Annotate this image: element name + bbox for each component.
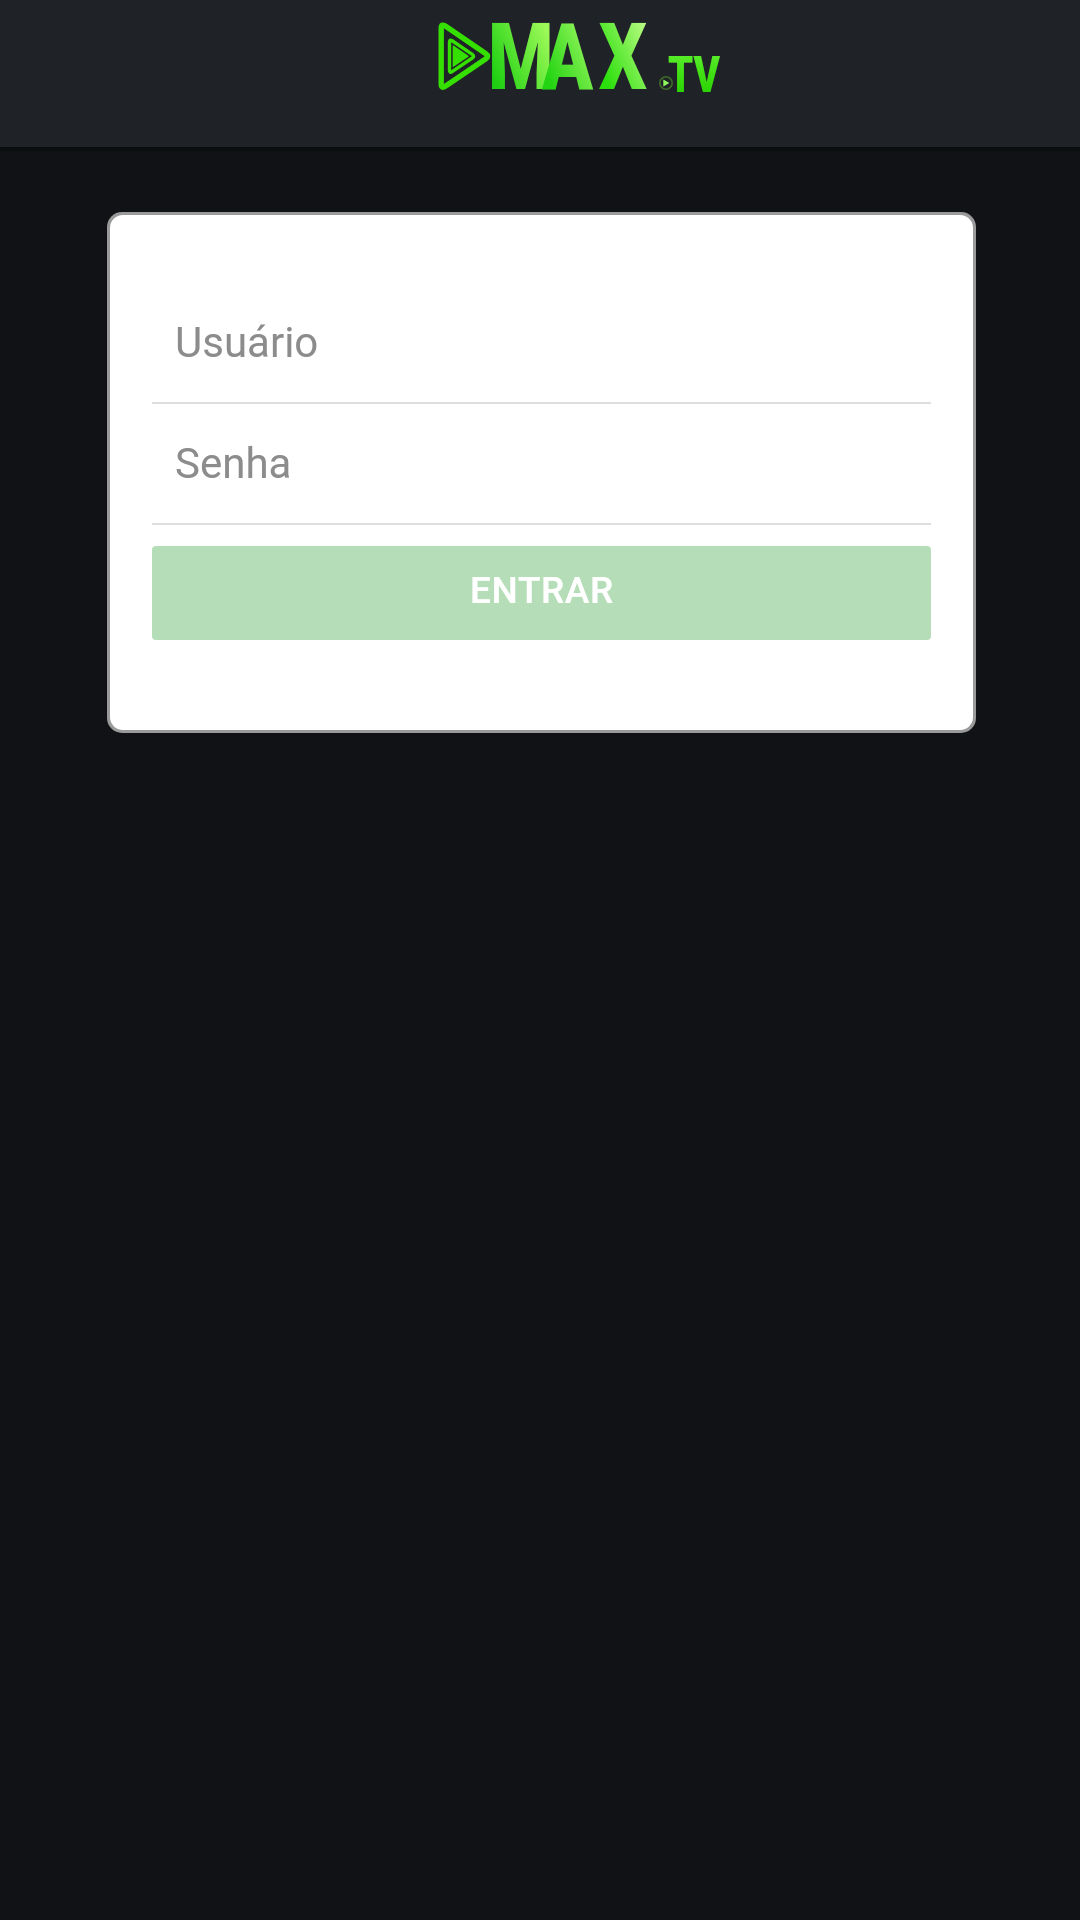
other: MAX.TV (438, 18, 726, 98)
button[interactable]: Usuário (152, 297, 931, 402)
staticText: TV (668, 46, 720, 105)
staticText: Usuário (175, 318, 319, 367)
staticText: A (542, 3, 593, 112)
staticText: Senha (175, 439, 292, 488)
staticText: ENTRAR (470, 569, 614, 612)
button[interactable]: Senha (152, 404, 931, 523)
staticText: M (488, 3, 554, 112)
staticText: X (599, 3, 647, 112)
button[interactable]: ENTRAR (152, 546, 931, 640)
